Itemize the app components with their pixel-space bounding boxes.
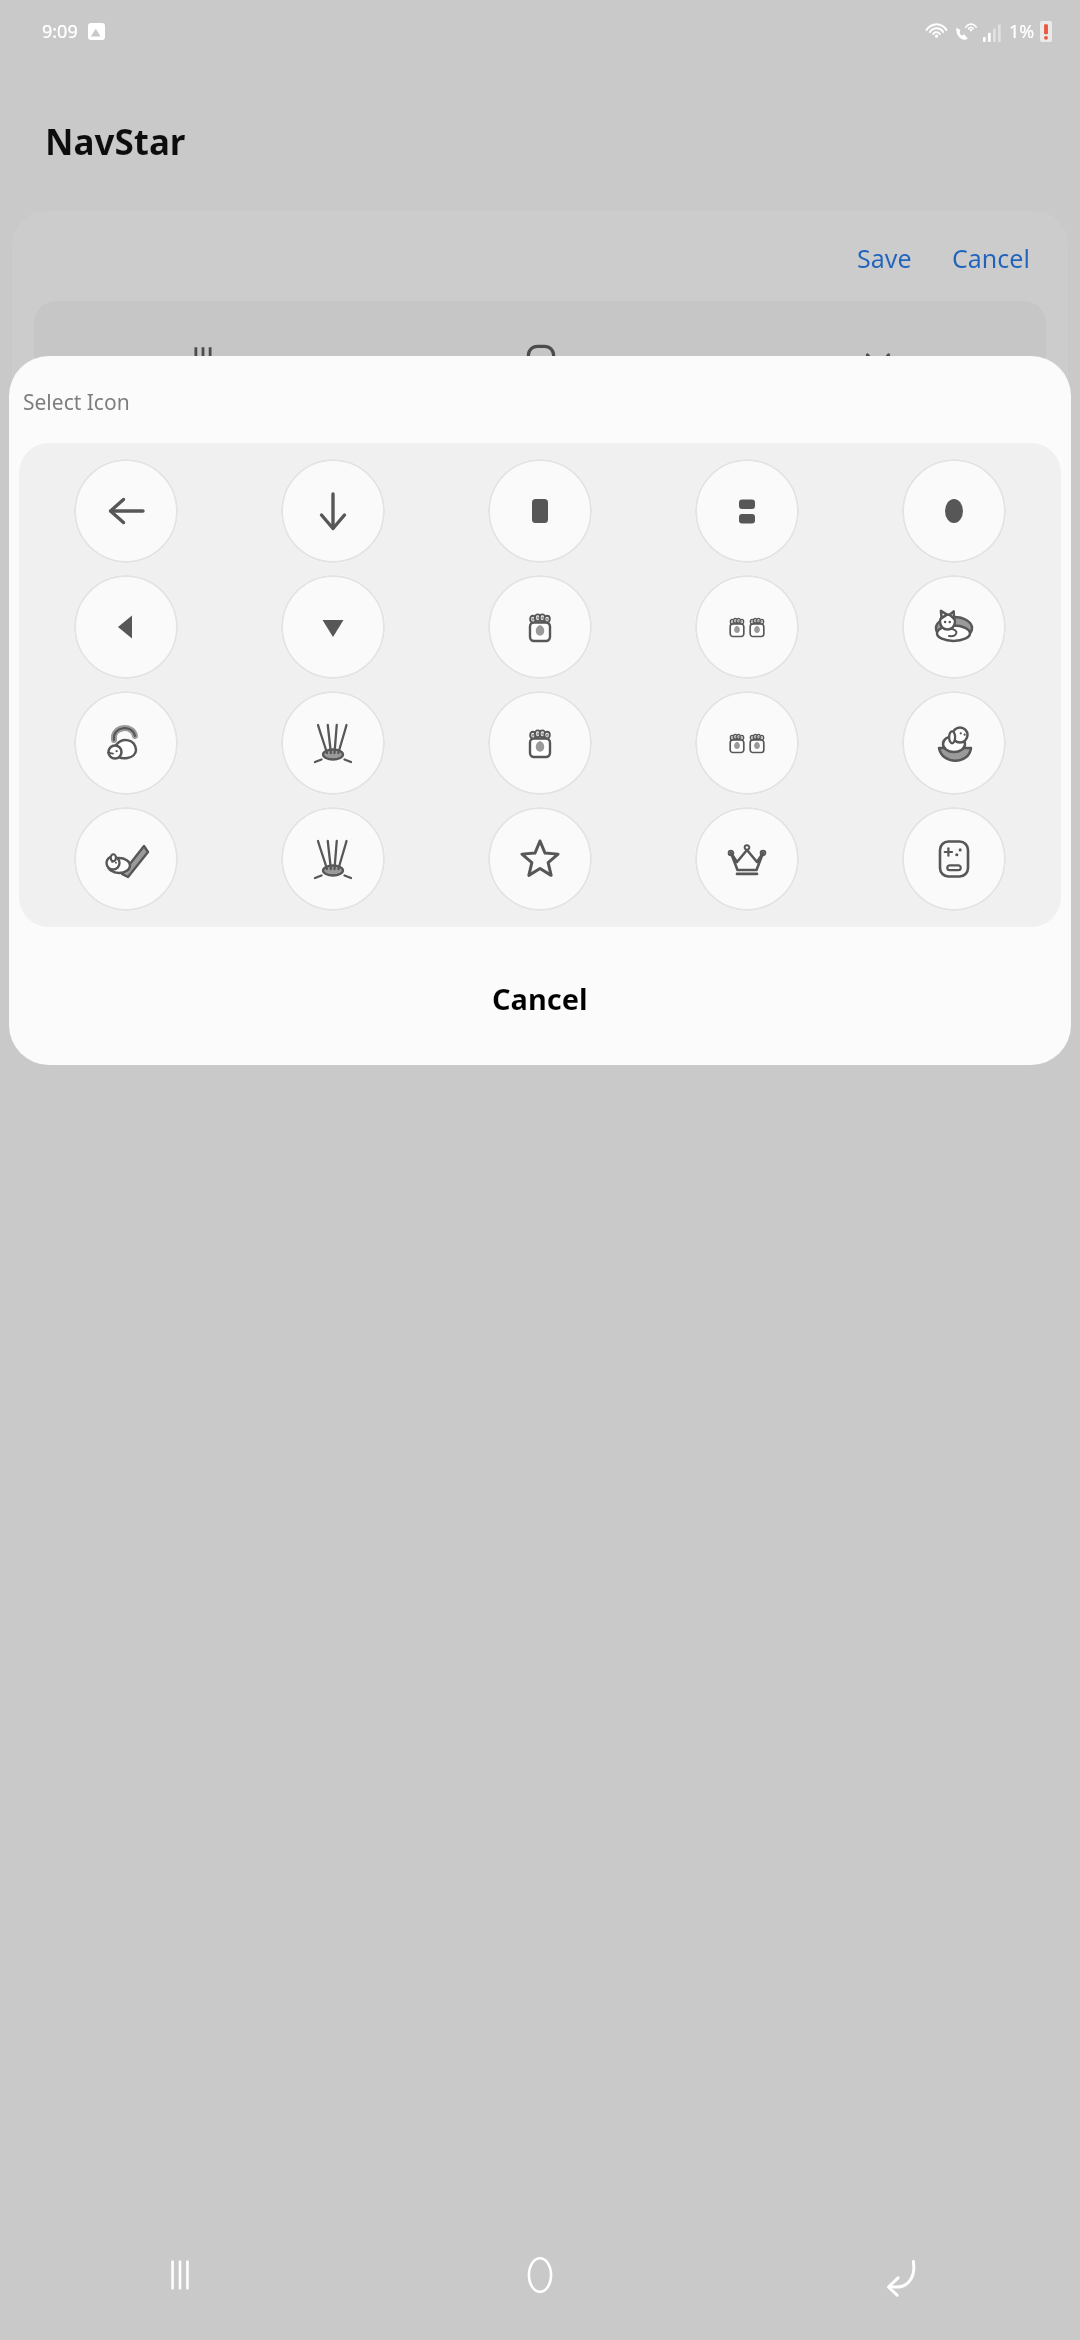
button[interactable]: Paw [488,575,592,679]
button[interactable]: Close keyboard [709,301,1046,421]
button[interactable]: Recents [0,2210,360,2340]
button[interactable]: Dog in bowl [902,691,1006,795]
button[interactable]: Double paw [695,575,799,679]
button[interactable]: CLOSE KEYBOARD [804,538,1054,748]
button[interactable]: Scratching post [281,691,385,795]
button[interactable]: Double paw [695,691,799,795]
button[interactable]: RECENTS [26,538,275,748]
button[interactable]: Grass [281,807,385,911]
staticText: Cancel [952,241,1030,275]
button[interactable]: Arrow left [74,459,178,563]
button[interactable]: HOME [285,538,534,748]
button[interactable]: Curled cat [902,575,1006,679]
button[interactable]: Game controller [902,807,1006,911]
button[interactable]: Star [488,807,592,911]
button[interactable]: Sliding dog [74,807,178,911]
button[interactable]: Recents [34,301,372,421]
button[interactable]: Stretching cat [74,691,178,795]
button[interactable]: Circle [902,459,1006,563]
staticText: Save [857,241,912,275]
button[interactable]: Cancel [946,235,1036,281]
button[interactable]: Save [851,235,918,281]
staticText: 9:09 [42,19,78,44]
button[interactable]: Home [372,301,709,421]
button[interactable]: BACK [544,538,794,748]
button[interactable]: Triangle down [281,575,385,679]
staticText: NavStar [45,118,186,166]
staticText: CLOSE KEYBOARD [804,560,1054,600]
button[interactable]: Cancel [9,955,1071,1041]
button[interactable]: Home [360,2210,720,2340]
button[interactable]: Triangle left [74,575,178,679]
button[interactable]: Crown [695,807,799,911]
button[interactable]: Square [488,459,592,563]
staticText: 1% [1009,19,1035,44]
staticText: Select Icon [23,388,130,417]
button[interactable]: Stacked bars [695,459,799,563]
button[interactable]: Back [720,2210,1080,2340]
button[interactable]: Paw [488,691,592,795]
button[interactable]: Arrow down [281,459,385,563]
staticText: Cancel [492,979,588,1018]
